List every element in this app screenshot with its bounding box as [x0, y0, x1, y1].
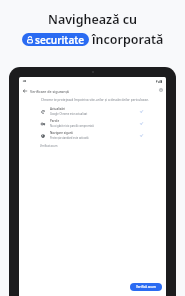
staticText: Verificare de siguranță [30, 89, 69, 94]
staticText: Navigare sigură [50, 131, 73, 135]
button[interactable]: Account [157, 86, 165, 94]
staticText: Actualizări [50, 107, 66, 111]
staticText: Parole [50, 119, 60, 123]
staticText: Verificat acum [40, 144, 58, 148]
button[interactable]: Actualizări [37, 107, 165, 118]
staticText: Protecția standard este activată [50, 136, 89, 140]
button[interactable]: Verifică acum [130, 283, 162, 291]
button[interactable]: Navigare sigură [37, 131, 165, 142]
staticText: Nu ai găsit nicio parolă compromisă [50, 124, 94, 128]
button[interactable]: Parole [37, 119, 165, 130]
staticText: Navighează cu [48, 11, 137, 28]
staticText: Google Chrome este actualizat [50, 112, 88, 116]
staticText: Verifică acum [136, 285, 156, 289]
staticText: încorporată [92, 31, 164, 48]
staticText: Chrome te protejează împotriva site-uril… [41, 98, 153, 102]
button[interactable]: Back [21, 87, 29, 95]
staticText: securitate [35, 33, 85, 46]
